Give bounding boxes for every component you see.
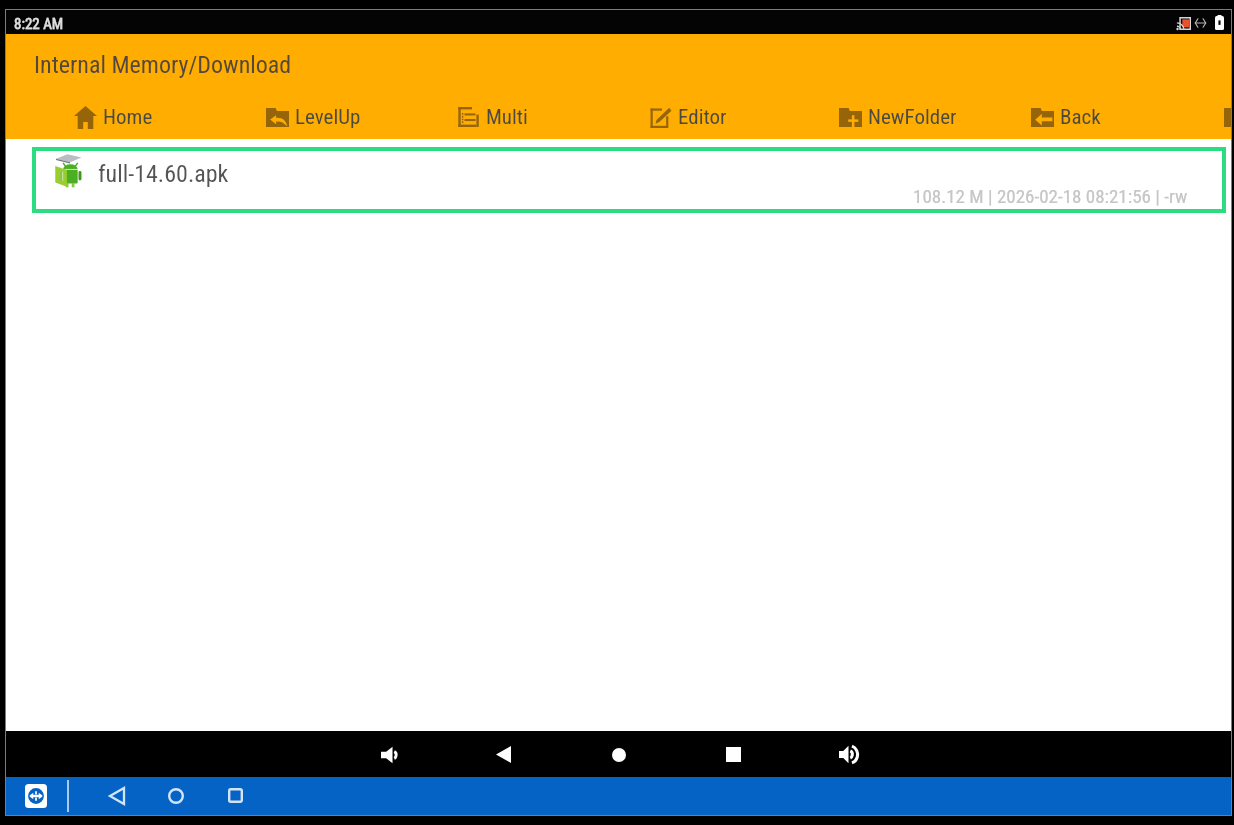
button[interactable]: Editor: [642, 98, 733, 136]
staticText: Home: [103, 105, 153, 130]
button[interactable]: Back: [486, 736, 521, 773]
staticText: 8:22 AM: [14, 15, 64, 33]
button[interactable]: Multi: [450, 98, 534, 136]
button[interactable]: Back: [100, 778, 134, 814]
staticText: LevelUp: [295, 105, 361, 130]
button[interactable]: full-14.60.apk: [36, 151, 1222, 209]
button[interactable]: More: [1215, 98, 1231, 136]
staticText: 108.12 M | 2026-02-18 08:21:56 | -rw: [913, 185, 1188, 207]
button[interactable]: Home: [158, 778, 194, 814]
staticText: Back: [1060, 105, 1101, 130]
button[interactable]: NewFolder: [832, 98, 963, 136]
staticText: Multi: [486, 105, 528, 130]
staticText: Internal Memory/Download: [34, 51, 292, 79]
staticText: Editor: [678, 105, 727, 130]
staticText: full-14.60.apk: [98, 160, 229, 188]
button[interactable]: Recents: [218, 778, 253, 813]
button[interactable]: Home: [602, 738, 636, 772]
button[interactable]: Recents: [716, 737, 751, 772]
button[interactable]: LevelUp: [259, 98, 367, 136]
button[interactable]: TeamViewer: [25, 784, 47, 808]
button[interactable]: Volume down: [371, 736, 409, 774]
button[interactable]: Home: [67, 98, 159, 136]
button[interactable]: Volume up: [829, 735, 868, 774]
staticText: NewFolder: [868, 105, 957, 130]
button[interactable]: Back: [1024, 98, 1107, 136]
